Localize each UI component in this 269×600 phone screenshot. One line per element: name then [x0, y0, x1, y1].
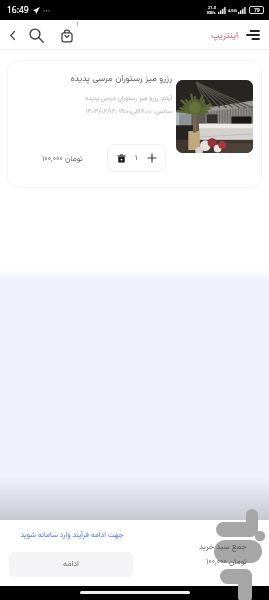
button[interactable]: اینتریپ — [211, 28, 239, 43]
button[interactable]: Menu — [244, 26, 262, 44]
button[interactable]: Delete item — [111, 148, 131, 168]
staticText: رزرو میز رستوران مرسی پدیده — [70, 72, 172, 86]
staticText: ادامه — [63, 558, 79, 571]
staticText: سانس: ۱۷:۰۰الی۱۹:۰۰ ،۱۴۰۳/۰۲/۱۴ — [85, 106, 172, 116]
staticText: 21.0 — [208, 5, 216, 10]
staticText: آیتم: رزرو میز رستوران مرسی پدیده — [85, 93, 172, 103]
button[interactable]: Search — [26, 25, 46, 45]
staticText: جمع سبد خرید — [199, 541, 247, 554]
button[interactable]: Add one — [142, 148, 162, 168]
staticText: 79 — [254, 7, 260, 14]
staticText: 1 — [76, 20, 80, 27]
staticText: ۱۰۰,۰۰۰ تومان — [206, 556, 247, 569]
staticText: KB/s — [207, 10, 216, 15]
staticText: 4.5G — [228, 8, 237, 13]
button[interactable]: ادامه — [9, 552, 133, 577]
button[interactable]: Back — [3, 26, 21, 44]
staticText: جهت ادامه فرآیند وارد سامانه شوید — [20, 529, 124, 541]
staticText: 16:49 — [7, 4, 29, 16]
staticText: ۱ — [135, 152, 138, 165]
staticText: ۱۰۰,۰۰۰ تومان — [42, 153, 83, 166]
button[interactable]: Cart — [56, 24, 78, 46]
